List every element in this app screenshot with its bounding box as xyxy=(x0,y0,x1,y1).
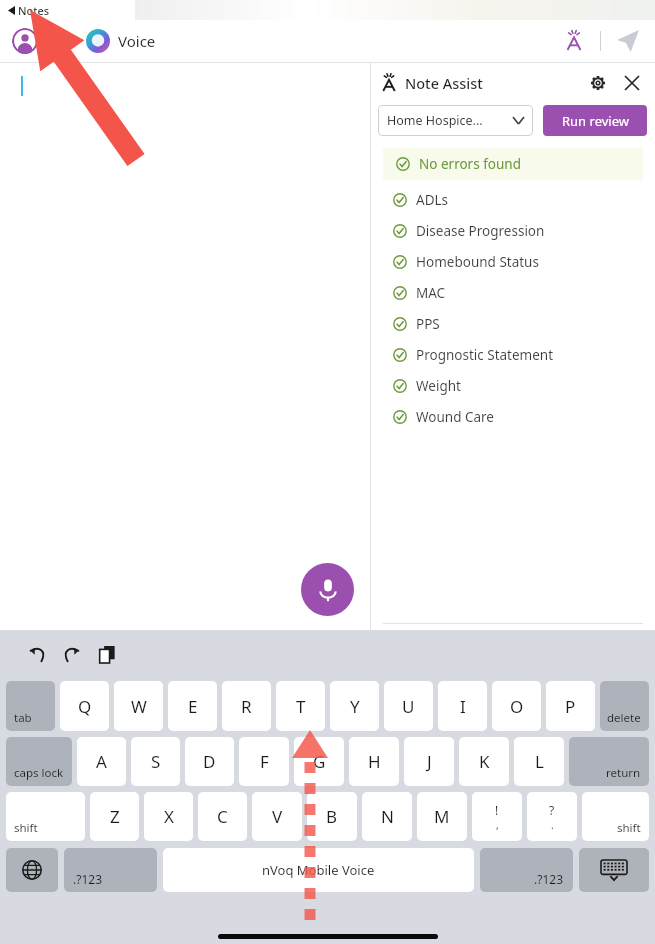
staticText: Homebound Status xyxy=(416,253,539,271)
staticText: Voice xyxy=(118,31,156,51)
staticText: J xyxy=(427,750,432,773)
button[interactable]: shift xyxy=(6,792,85,841)
button[interactable]: return xyxy=(569,737,649,786)
staticText: Wound Care xyxy=(416,408,494,426)
button[interactable]: B xyxy=(307,792,357,841)
button[interactable]: V xyxy=(252,792,302,841)
button[interactable]: Account xyxy=(12,28,38,54)
button[interactable]: Homebound Status xyxy=(371,246,655,277)
button[interactable] xyxy=(6,848,58,892)
staticText: , xyxy=(496,818,499,832)
staticText: C xyxy=(217,805,228,828)
button[interactable]: S xyxy=(131,737,180,786)
staticText: D xyxy=(203,750,216,773)
staticText: I xyxy=(460,695,466,718)
button[interactable]: F xyxy=(239,737,289,786)
button[interactable]: Send xyxy=(613,26,643,56)
staticText: Weight xyxy=(416,377,461,395)
button[interactable]: .?123 xyxy=(480,848,573,892)
staticText: U xyxy=(402,695,415,718)
button[interactable]: G xyxy=(294,737,344,786)
staticText: delete xyxy=(607,710,641,726)
button[interactable]: Weight xyxy=(371,370,655,401)
staticText: ADLs xyxy=(416,191,449,209)
button[interactable]: MAC xyxy=(371,277,655,308)
button[interactable]: Q xyxy=(60,681,109,731)
button[interactable]: ADLs xyxy=(371,184,655,215)
button[interactable]: caps lock xyxy=(6,737,72,786)
staticText: G xyxy=(313,750,326,773)
staticText: O xyxy=(510,695,524,718)
button[interactable]: M xyxy=(417,792,467,841)
staticText: W xyxy=(131,695,147,718)
staticText: ? xyxy=(549,802,555,818)
staticText: R xyxy=(241,695,252,718)
button[interactable]: .?123 xyxy=(64,848,157,892)
staticText: .?123 xyxy=(73,871,103,887)
button[interactable]: X xyxy=(144,792,193,841)
button[interactable]: Disease Progression xyxy=(371,215,655,246)
button[interactable]: Prognostic Statement xyxy=(371,339,655,370)
staticText: S xyxy=(151,750,161,773)
button[interactable]: Record xyxy=(301,563,354,616)
button[interactable]: T xyxy=(276,681,325,731)
staticText: Z xyxy=(110,805,120,828)
button[interactable] xyxy=(579,848,649,892)
staticText: A xyxy=(96,750,107,773)
button[interactable]: tab xyxy=(6,681,55,731)
button[interactable]: N xyxy=(362,792,412,841)
button[interactable]: Y xyxy=(330,681,379,731)
button[interactable]: J xyxy=(404,737,454,786)
button[interactable]: Redo xyxy=(57,639,87,669)
staticText: F xyxy=(260,750,269,773)
button[interactable]: W xyxy=(114,681,163,731)
staticText: shift xyxy=(14,820,38,836)
button[interactable]: Wound Care xyxy=(371,401,655,432)
button[interactable]: Note Assist xyxy=(558,25,590,57)
staticText: Q xyxy=(78,695,92,718)
button[interactable]: I xyxy=(438,681,487,731)
button[interactable]: Settings xyxy=(585,70,611,96)
staticText: PPS xyxy=(416,315,440,333)
button[interactable]: Paste xyxy=(92,639,122,669)
button[interactable]: shift xyxy=(582,792,649,841)
button[interactable]: Undo xyxy=(22,639,52,669)
button[interactable]: K xyxy=(459,737,509,786)
staticText: E xyxy=(188,695,198,718)
button[interactable]: A xyxy=(77,737,126,786)
button[interactable]: C xyxy=(198,792,247,841)
button[interactable]: ? xyxy=(527,792,577,841)
button[interactable]: nVoq Mobile Voice xyxy=(163,848,474,892)
staticText: Run review xyxy=(562,112,629,130)
button[interactable]: L xyxy=(514,737,564,786)
staticText: No errors found xyxy=(419,155,521,173)
button[interactable]: Home Hospice... xyxy=(378,105,533,136)
button[interactable]: D xyxy=(185,737,234,786)
staticText: nVoq Mobile Voice xyxy=(262,861,375,879)
staticText: Note Assist xyxy=(405,73,483,93)
staticText: X xyxy=(164,805,174,828)
staticText: M xyxy=(434,805,450,828)
button[interactable] xyxy=(0,63,370,630)
button[interactable]: U xyxy=(384,681,433,731)
staticText: .?123 xyxy=(534,871,564,887)
button[interactable]: delete xyxy=(600,681,649,731)
staticText: B xyxy=(326,805,338,828)
button[interactable]: E xyxy=(168,681,217,731)
button[interactable]: Voice xyxy=(86,29,156,53)
button[interactable]: Z xyxy=(90,792,139,841)
staticText: caps lock xyxy=(14,765,64,781)
button[interactable]: H xyxy=(349,737,399,786)
button[interactable]: P xyxy=(546,681,595,731)
staticText: V xyxy=(272,805,283,828)
button[interactable]: R xyxy=(222,681,271,731)
button[interactable]: PPS xyxy=(371,308,655,339)
button[interactable]: Close xyxy=(619,70,645,96)
button[interactable]: Run review xyxy=(543,105,647,136)
staticText: Home Hospice... xyxy=(387,112,483,129)
staticText: MAC xyxy=(416,284,446,302)
button[interactable]: O xyxy=(492,681,541,731)
staticText: Prognostic Statement xyxy=(416,346,554,364)
staticText: L xyxy=(535,750,544,773)
button[interactable]: ! xyxy=(472,792,522,841)
